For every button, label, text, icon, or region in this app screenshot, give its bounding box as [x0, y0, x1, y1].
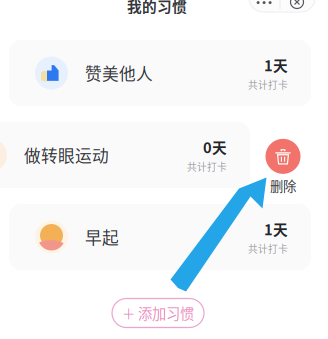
button[interactable]: 早起 — [9, 204, 311, 270]
button[interactable]: ＋ — [112, 298, 204, 327]
staticText: 赞美他人 — [85, 61, 153, 85]
button[interactable]: More — [249, 0, 279, 14]
staticText: 共计打卡 — [248, 242, 288, 256]
button[interactable]: 删除 — [265, 139, 300, 195]
staticText: 共计打卡 — [248, 78, 288, 92]
button[interactable]: 做转眼运动 — [0, 122, 250, 188]
button[interactable]: 赞美他人 — [9, 40, 311, 106]
staticText: 0天 — [203, 136, 227, 157]
button[interactable]: Close — [282, 0, 312, 13]
staticText: 共计打卡 — [187, 160, 227, 174]
staticText: 早起 — [85, 225, 119, 249]
staticText: 做转眼运动 — [24, 143, 109, 167]
staticText: 1天 — [264, 54, 288, 75]
staticText: 1天 — [264, 218, 288, 239]
staticText: 添加习惯 — [138, 303, 194, 323]
staticText: 我的习惯 — [127, 0, 187, 17]
staticText: ＋ — [122, 303, 135, 323]
staticText: 删除 — [270, 176, 296, 195]
